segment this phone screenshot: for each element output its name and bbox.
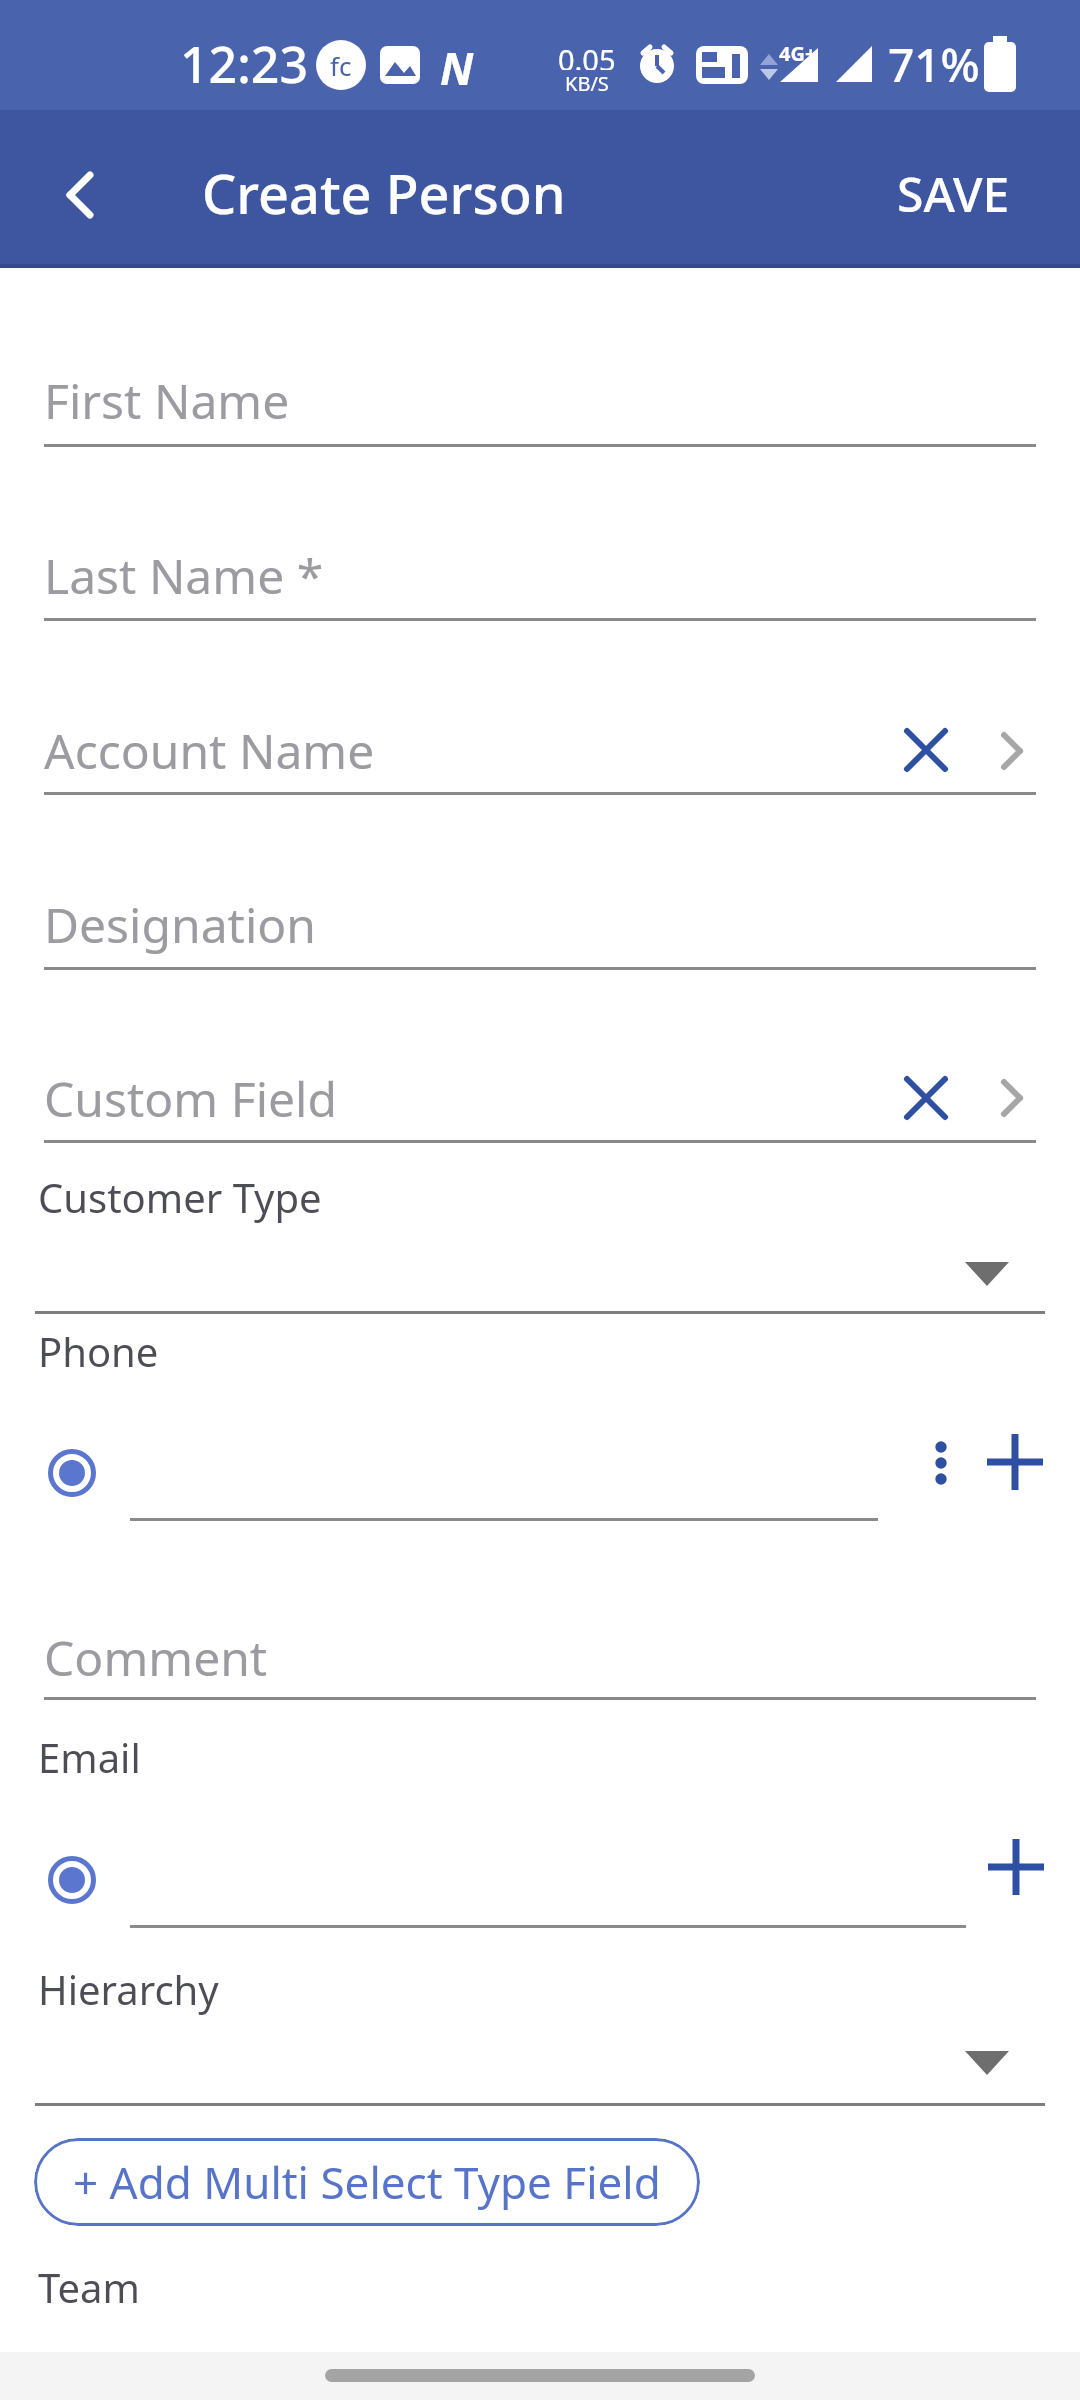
button[interactable]: Account Name	[44, 710, 375, 790]
staticText: Custom Field	[44, 1066, 337, 1131]
staticText: fc	[330, 48, 352, 83]
button[interactable]	[47, 1448, 97, 1498]
button[interactable]	[904, 1076, 948, 1120]
staticText: Customer Type	[38, 1170, 322, 1224]
staticText: Last Name *	[44, 543, 324, 608]
button[interactable]	[992, 731, 1032, 771]
button[interactable]	[992, 1078, 1032, 1118]
staticText: Hierarchy	[38, 1962, 219, 2016]
staticText: + Add Multi Select Type Field	[73, 2152, 661, 2212]
button[interactable]: SAVE	[0, 153, 1010, 233]
button[interactable]: + Add Multi Select Type Field	[34, 2138, 700, 2226]
button[interactable]: Last Name *	[44, 535, 324, 615]
staticText: 12:23	[180, 30, 308, 98]
staticText: Designation	[44, 892, 317, 957]
button[interactable]	[58, 173, 102, 217]
staticText: N	[440, 38, 474, 98]
button[interactable]: Custom Field	[44, 1058, 337, 1138]
button[interactable]	[904, 728, 948, 772]
staticText: Team	[38, 2260, 140, 2314]
button[interactable]	[47, 1855, 97, 1905]
staticText: 4G+	[779, 40, 817, 67]
button[interactable]: First Name	[44, 360, 290, 440]
button[interactable]	[934, 1440, 948, 1486]
staticText: Create Person	[202, 156, 566, 230]
staticText: Comment	[44, 1625, 268, 1690]
staticText: Email	[38, 1730, 141, 1784]
button[interactable]	[987, 1434, 1043, 1490]
staticText: 0.05	[558, 40, 616, 70]
staticText: First Name	[44, 368, 290, 433]
staticText: 71%	[888, 33, 980, 96]
staticText: Account Name	[44, 718, 375, 783]
staticText: SAVE	[897, 161, 1010, 226]
staticText: Phone	[38, 1324, 159, 1378]
button[interactable]	[988, 1839, 1044, 1895]
button[interactable]	[965, 1262, 1009, 1286]
staticText: KB/S	[565, 70, 609, 94]
button[interactable]	[965, 2051, 1009, 2075]
button[interactable]: Comment	[44, 1617, 268, 1697]
button[interactable]: Designation	[44, 884, 317, 964]
